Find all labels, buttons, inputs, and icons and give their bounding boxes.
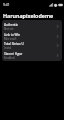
staticText: Xiaomi Hype	[4, 52, 23, 56]
button[interactable]: Xiaomi Hype	[2, 51, 62, 60]
button[interactable]: Authentic	[2, 22, 62, 31]
staticText: Instal	[4, 46, 12, 50]
button[interactable]: Link to Win	[2, 32, 62, 41]
other: Open	[55, 34, 60, 39]
staticText: Not set	[4, 27, 14, 31]
other: Open	[55, 24, 60, 29]
staticText: Microsoft	[4, 37, 17, 41]
staticText: Total Sintax U	[4, 42, 24, 46]
other: Open	[55, 43, 60, 48]
staticText: Enabled	[4, 56, 15, 60]
staticText: 9:41	[3, 2, 10, 7]
staticText: Link to Win	[4, 33, 21, 37]
button[interactable]: Total Sintax U	[2, 41, 62, 50]
staticText: Authentic	[4, 23, 18, 27]
staticText: Harunapixelodeme Apps	[3, 12, 63, 19]
other: Open	[55, 53, 60, 58]
